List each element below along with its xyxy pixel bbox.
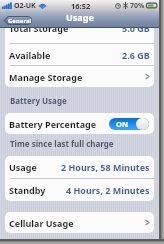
button[interactable]: Available	[5, 44, 154, 65]
staticText: 16:52	[71, 1, 91, 11]
staticText: Time since last full charge	[10, 138, 114, 149]
staticText: 2.6 GB	[122, 49, 150, 61]
staticText: Battery Usage	[10, 95, 67, 106]
staticText: 4 Hours, 2 Minutes	[66, 184, 150, 196]
staticText: General	[8, 17, 32, 25]
button[interactable]: ON	[108, 117, 150, 131]
staticText: O2-UK	[14, 1, 36, 11]
button[interactable]: Manage Storage	[5, 66, 154, 87]
staticText: Available	[9, 49, 51, 61]
other: Open	[145, 72, 150, 81]
button[interactable]: General	[3, 16, 32, 25]
staticText: Total Storage	[9, 28, 69, 34]
staticText: 5.0 GB	[122, 28, 150, 34]
staticText: Usage	[66, 11, 94, 23]
other: Open	[145, 218, 150, 227]
button[interactable]: Battery Percentage	[5, 113, 154, 134]
staticText: 70%	[130, 1, 145, 11]
staticText: Manage Storage	[9, 71, 83, 83]
staticText: Usage	[9, 161, 37, 173]
button[interactable]: Standby	[5, 179, 154, 201]
button[interactable]: Cellular Usage	[5, 212, 154, 233]
button[interactable]: Usage	[5, 156, 154, 178]
staticText: Standby	[9, 184, 46, 196]
staticText: ON	[116, 119, 129, 129]
staticText: 2 Hours, 58 Minutes	[61, 161, 150, 173]
staticText: Cellular Usage	[9, 217, 74, 229]
button[interactable]: Total Storage	[5, 28, 154, 35]
staticText: Battery Percentage	[9, 118, 97, 130]
